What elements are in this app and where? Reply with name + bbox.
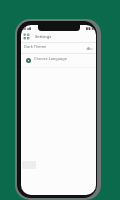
button[interactable]: Language [21,54,96,67]
button[interactable]: Dark Theme [21,43,96,53]
button[interactable]: Apps [21,32,96,42]
staticText: Dark Theme [24,44,47,49]
button[interactable]: Dark theme toggle [86,46,93,51]
staticText: Choose Language [34,56,67,61]
other: Language [26,58,31,63]
other: Apps [24,34,29,39]
staticText: Settings [35,34,52,40]
